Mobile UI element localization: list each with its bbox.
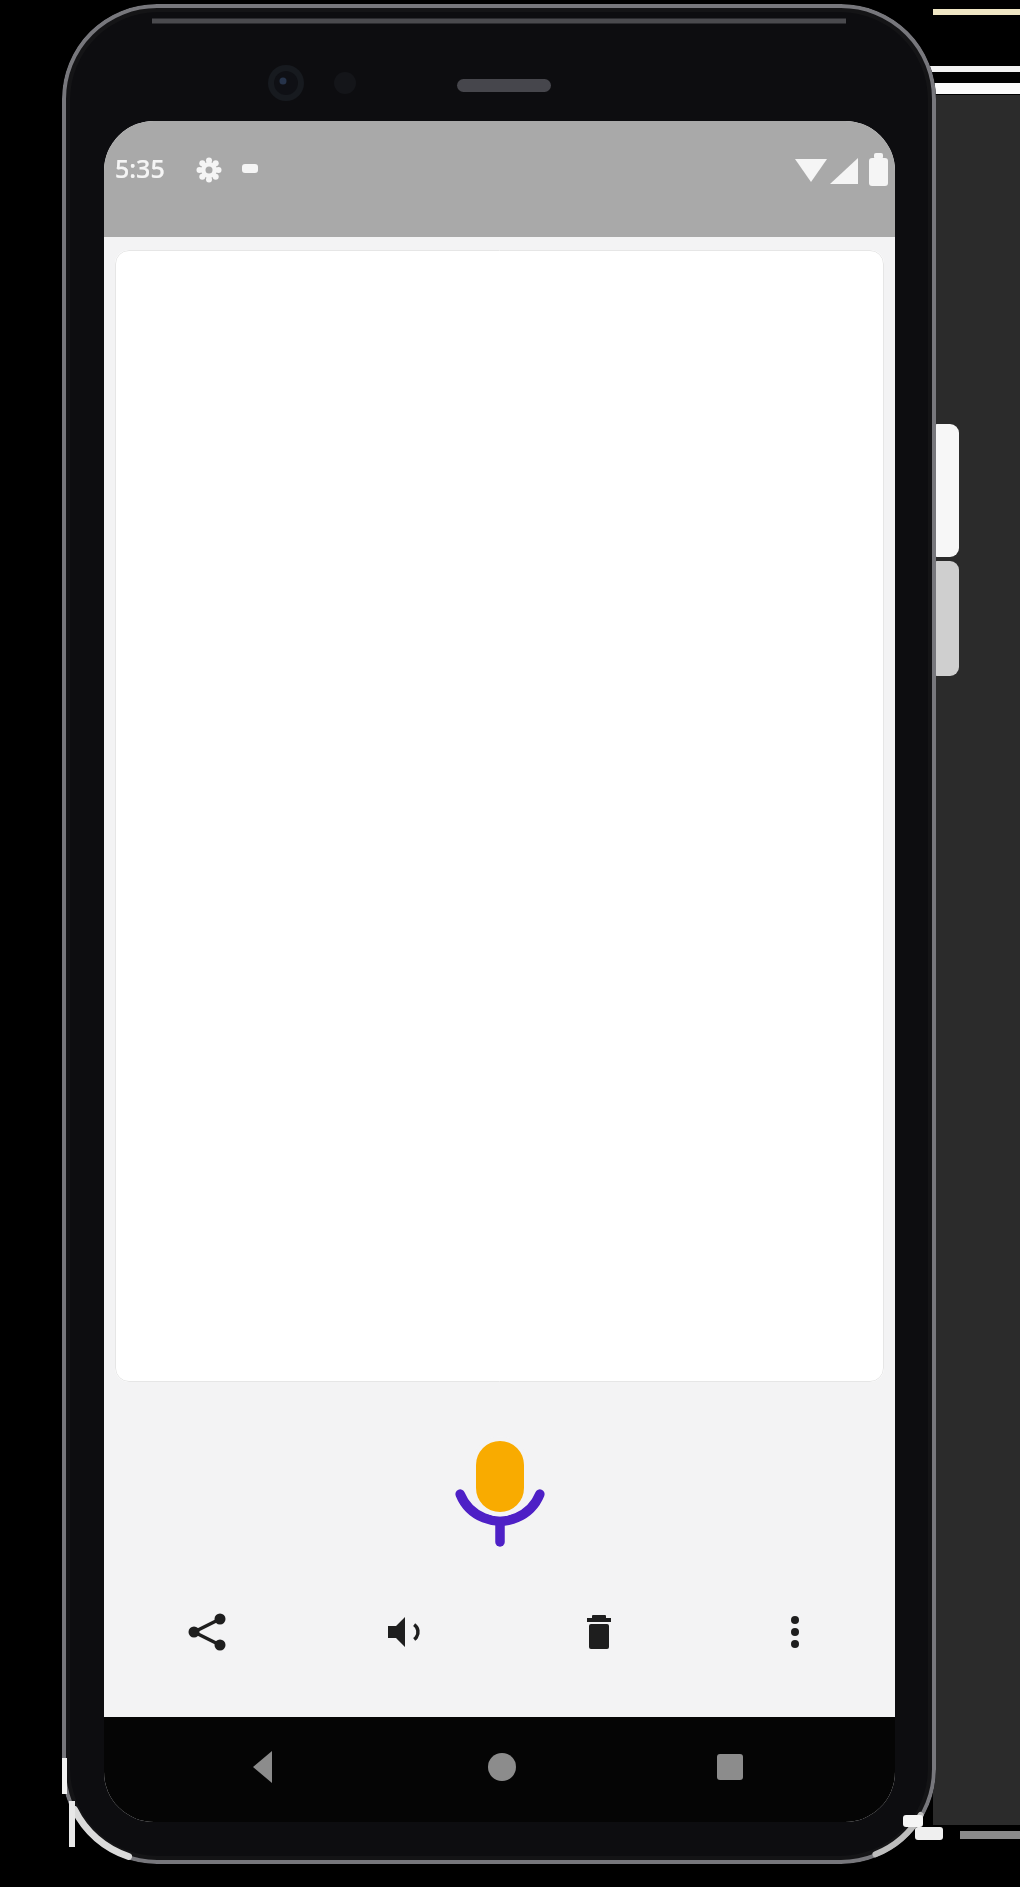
- button[interactable]: [765, 1602, 825, 1662]
- staticText: 5:35: [115, 151, 165, 185]
- button[interactable]: [177, 1602, 237, 1662]
- button[interactable]: [700, 1737, 760, 1797]
- button[interactable]: [569, 1602, 629, 1662]
- button[interactable]: [472, 1737, 532, 1797]
- button[interactable]: [440, 1425, 560, 1560]
- button[interactable]: [235, 1737, 295, 1797]
- button[interactable]: [374, 1602, 434, 1662]
